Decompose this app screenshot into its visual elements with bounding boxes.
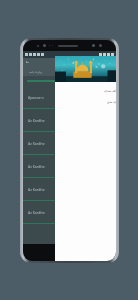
staticText: Az Kankhe	[28, 141, 45, 146]
staticText: ما	[26, 60, 29, 64]
button[interactable]: Az Kankhe	[23, 178, 116, 201]
staticText: Az Kankhe	[28, 118, 45, 123]
button[interactable]: Az Kankhe	[23, 132, 116, 155]
button[interactable]: Ajansoe n	[23, 86, 116, 109]
staticText: Az Kankhe	[28, 210, 45, 215]
staticText: Ajansoe n	[28, 95, 44, 100]
staticText: Az Kankhe	[28, 164, 45, 169]
staticText: اضافه به علاقه مندی	[104, 88, 116, 92]
staticText: Az Kankhe	[28, 187, 45, 192]
staticText: زیارت نامه	[29, 70, 43, 74]
staticText: اشتراک‌گذاری متن	[107, 99, 116, 103]
button[interactable]: Az Kankhe	[23, 109, 116, 132]
button[interactable]: Az Kankhe	[23, 155, 116, 178]
button[interactable]: Az Kankhe	[23, 201, 116, 224]
button[interactable]: اضافه به علاقه مندی	[55, 84, 116, 95]
button[interactable]: اشتراک‌گذاری متن	[55, 95, 116, 106]
